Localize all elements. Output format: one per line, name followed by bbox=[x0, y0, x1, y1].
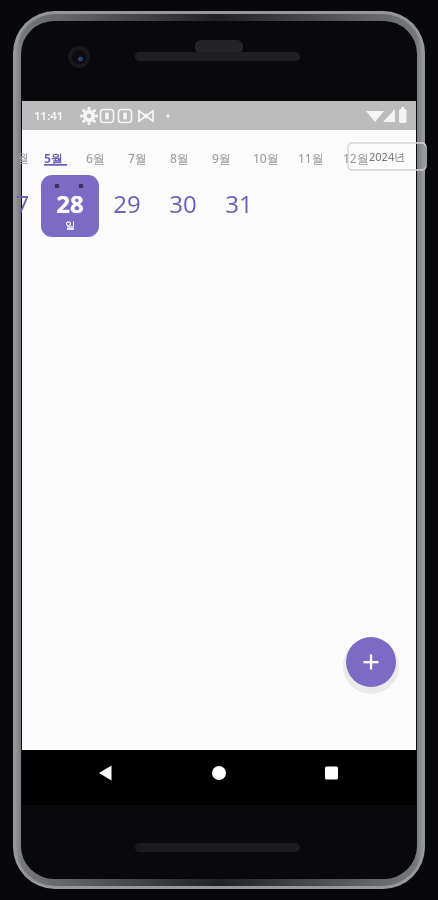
staticText: 9월 bbox=[212, 150, 231, 166]
staticText: 7월 bbox=[128, 150, 147, 166]
staticText: 31 bbox=[218, 187, 260, 220]
button[interactable]: 28 bbox=[41, 175, 99, 237]
button[interactable]: 2024년 bbox=[348, 143, 426, 170]
button[interactable]: 31 bbox=[218, 178, 260, 234]
staticText: 11:41 bbox=[34, 108, 64, 124]
staticText: 5월 bbox=[44, 150, 63, 166]
staticText: 일 bbox=[41, 219, 99, 232]
button[interactable]: 12월 bbox=[336, 143, 372, 169]
button[interactable]: Back bbox=[85, 753, 125, 793]
button[interactable]: 29 bbox=[106, 178, 148, 234]
staticText: 29 bbox=[106, 187, 148, 220]
button[interactable]: 8월 bbox=[163, 143, 199, 169]
button[interactable]: 30 bbox=[162, 178, 204, 234]
staticText: 6월 bbox=[86, 150, 105, 166]
staticText: 2024년 bbox=[369, 149, 406, 164]
button[interactable]: 10월 bbox=[246, 143, 282, 169]
button[interactable]: 11월 bbox=[291, 143, 327, 169]
staticText: 8월 bbox=[170, 150, 189, 166]
button[interactable]: 9월 bbox=[205, 143, 241, 169]
staticText: 10월 bbox=[253, 150, 279, 166]
staticText: 28 bbox=[41, 187, 99, 220]
staticText: 30 bbox=[162, 187, 204, 220]
button[interactable]: 7월 bbox=[121, 143, 157, 169]
staticText: 12월 bbox=[343, 150, 369, 166]
button[interactable]: Add event bbox=[346, 637, 396, 687]
button[interactable]: 5월 bbox=[37, 143, 73, 169]
button[interactable]: 6월 bbox=[79, 143, 115, 169]
staticText: 7 bbox=[16, 188, 30, 219]
staticText: 월 bbox=[17, 150, 29, 165]
staticText: 11월 bbox=[298, 150, 324, 166]
button[interactable]: Recent apps bbox=[312, 753, 352, 793]
button[interactable]: Home bbox=[199, 753, 239, 793]
